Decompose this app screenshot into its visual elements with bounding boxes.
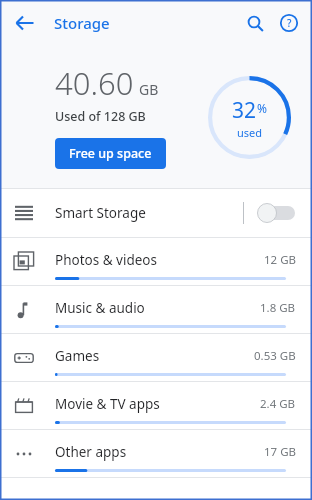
staticText: 1.8 GB: [260, 300, 296, 316]
staticText: Photos & videos: [55, 251, 157, 269]
button[interactable]: Other apps: [0, 430, 312, 478]
staticText: ?: [287, 16, 292, 30]
button[interactable]: Photos & videos: [0, 238, 312, 286]
staticText: Used of 128 GB: [55, 108, 146, 125]
staticText: Music & audio: [55, 299, 145, 317]
staticText: 17 GB: [264, 444, 296, 460]
button[interactable]: Smart Storage toggle: [254, 198, 298, 228]
staticText: 32: [232, 96, 257, 125]
staticText: 12 GB: [264, 252, 296, 268]
staticText: Free up space: [69, 145, 152, 162]
staticText: Other apps: [55, 443, 127, 461]
button[interactable]: Free up space: [55, 138, 166, 169]
button[interactable]: Help: [272, 6, 306, 40]
button[interactable]: Search: [238, 6, 272, 40]
staticText: GB: [139, 80, 159, 99]
button[interactable]: Smart Storage: [0, 189, 312, 237]
staticText: Storage: [54, 13, 110, 33]
staticText: Smart Storage: [55, 204, 146, 222]
staticText: 40.60: [55, 62, 134, 104]
staticText: used: [237, 125, 263, 140]
button[interactable]: Music & audio: [0, 286, 312, 334]
button[interactable]: Movie & TV apps: [0, 382, 312, 430]
staticText: 2.4 GB: [260, 396, 296, 412]
button[interactable]: Back: [8, 6, 42, 40]
staticText: Games: [55, 347, 100, 365]
staticText: Movie & TV apps: [55, 395, 160, 413]
button[interactable]: Games: [0, 334, 312, 382]
staticText: 0.53 GB: [254, 348, 296, 364]
staticText: %: [257, 100, 267, 116]
